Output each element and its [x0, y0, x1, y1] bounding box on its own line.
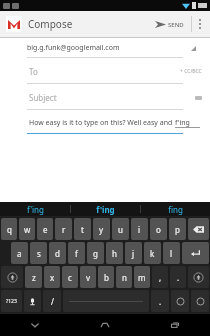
- staticText: k: [150, 248, 155, 259]
- button[interactable]: r: [55, 218, 72, 240]
- button[interactable]: s: [30, 242, 47, 264]
- staticText: ?123: [6, 298, 17, 305]
- button[interactable]: q: [1, 218, 17, 240]
- button[interactable]: Shift: [188, 266, 209, 288]
- staticText: u: [118, 224, 123, 235]
- staticText: r: [62, 224, 66, 235]
- button[interactable]: Back: [0, 314, 70, 336]
- button[interactable]: Home: [70, 314, 140, 336]
- staticText: Compose: [28, 17, 73, 31]
- button[interactable]: h: [106, 242, 123, 264]
- staticText: q: [7, 224, 12, 235]
- button[interactable]: a: [11, 242, 28, 264]
- button[interactable]: Subject: [0, 92, 210, 103]
- staticText: .: [177, 272, 180, 283]
- staticText: p: [175, 224, 180, 235]
- button[interactable]: To: [0, 66, 210, 77]
- staticText: t: [81, 224, 84, 235]
- staticText: d: [55, 248, 60, 259]
- staticText: g: [93, 248, 98, 259]
- staticText: j: [132, 248, 135, 259]
- button[interactable]: More options: [196, 17, 204, 31]
- button[interactable]: e: [37, 218, 53, 240]
- staticText: b: [104, 272, 109, 283]
- button[interactable]: v: [80, 266, 96, 288]
- button[interactable]: c: [62, 266, 78, 288]
- staticText: f: [75, 248, 78, 259]
- button[interactable]: .: [151, 290, 169, 312]
- button[interactable]: Shift: [1, 266, 23, 288]
- button[interactable]: f: [68, 242, 85, 264]
- button[interactable]: Gmail: [6, 16, 22, 32]
- button[interactable]: Recent apps: [140, 314, 210, 336]
- button[interactable]: Emoji: [171, 290, 189, 312]
- button[interactable]: f'ing: [0, 202, 70, 216]
- staticText: v: [86, 272, 91, 283]
- button[interactable]: d: [49, 242, 66, 264]
- button[interactable]: Backspace: [188, 218, 209, 240]
- button[interactable]: w: [19, 218, 35, 240]
- staticText: e: [43, 224, 48, 235]
- staticText: big.g.funk@googlemail.com: [27, 43, 120, 53]
- button[interactable]: y: [93, 218, 110, 240]
- staticText: fing: [168, 204, 183, 215]
- button[interactable]: m: [134, 266, 150, 288]
- staticText: m: [138, 272, 146, 283]
- button[interactable]: z: [25, 266, 42, 288]
- staticText: f'ing: [96, 204, 115, 215]
- staticText: a: [17, 248, 22, 259]
- button[interactable]: o: [150, 218, 167, 240]
- staticText: + CC/BCC: [180, 68, 202, 75]
- staticText: How easy is it to type on this? Well eas…: [29, 118, 175, 128]
- staticText: h: [112, 248, 117, 259]
- button[interactable]: u: [112, 218, 129, 240]
- button[interactable]: SEND: [152, 17, 187, 32]
- staticText: /: [51, 296, 54, 307]
- button[interactable]: How easy is it to type on this? Well eas…: [0, 118, 210, 128]
- button[interactable]: /: [43, 290, 61, 312]
- button[interactable]: b: [98, 266, 114, 288]
- button[interactable]: Voice input: [24, 290, 41, 312]
- button[interactable]: k: [144, 242, 161, 264]
- staticText: To: [29, 66, 38, 77]
- button[interactable]: g: [87, 242, 104, 264]
- button[interactable]: ,: [152, 266, 168, 288]
- button[interactable]: Hide keyboard: [191, 290, 209, 312]
- button[interactable]: p: [169, 218, 186, 240]
- button[interactable]: .: [170, 266, 186, 288]
- button[interactable]: x: [44, 266, 60, 288]
- staticText: w: [24, 224, 31, 235]
- button[interactable]: i: [131, 218, 148, 240]
- button[interactable]: ?123: [1, 290, 22, 312]
- staticText: z: [32, 272, 36, 283]
- button[interactable]: big.g.funk@googlemail.com: [0, 43, 210, 53]
- staticText: y: [99, 224, 104, 235]
- button[interactable]: Enter: [182, 242, 209, 264]
- staticText: .: [159, 296, 162, 307]
- button[interactable]: j: [125, 242, 142, 264]
- staticText: SEND: [168, 21, 184, 29]
- button[interactable]: n: [116, 266, 132, 288]
- button[interactable]: Space: [63, 290, 149, 312]
- button[interactable]: fing: [141, 202, 210, 216]
- staticText: f'ing: [27, 204, 44, 215]
- staticText: c: [68, 272, 72, 283]
- staticText: s: [37, 248, 41, 259]
- staticText: i: [138, 224, 141, 235]
- button[interactable]: t: [74, 218, 91, 240]
- staticText: n: [122, 272, 127, 283]
- staticText: x: [50, 272, 55, 283]
- staticText: ,: [159, 272, 162, 283]
- button[interactable]: f'ing: [71, 202, 140, 216]
- staticText: Subject: [29, 92, 57, 103]
- button[interactable]: l: [163, 242, 180, 264]
- staticText: l: [170, 248, 173, 259]
- staticText: f'ing: [175, 118, 190, 128]
- staticText: o: [156, 224, 161, 235]
